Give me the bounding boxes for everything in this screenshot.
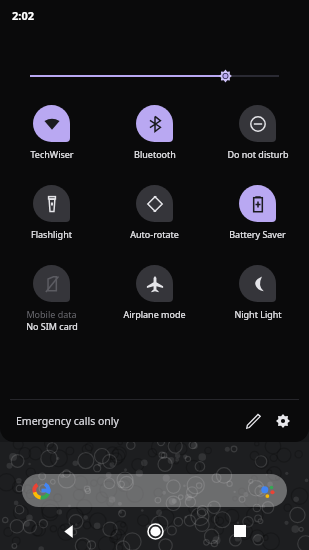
staticText: Bluetooth [134, 148, 176, 160]
button[interactable]: Brightness [0, 68, 309, 84]
staticText: Do not disturb [227, 148, 289, 160]
button[interactable]: Mobile data [0, 265, 103, 332]
button[interactable]: Night Light [206, 265, 309, 320]
staticText: 2:02 [12, 8, 34, 23]
staticText: TechWiser [30, 148, 74, 160]
button[interactable]: Edit [239, 407, 267, 435]
button[interactable]: Auto-rotate [103, 185, 206, 240]
staticText: Flashlight [31, 228, 72, 240]
button[interactable]: Back [56, 518, 82, 544]
button[interactable]: Search [22, 474, 287, 507]
button[interactable]: TechWiser [0, 105, 103, 160]
button[interactable]: Airplane mode [103, 265, 206, 320]
button[interactable]: Bluetooth [103, 105, 206, 160]
staticText: Emergency calls only [16, 414, 119, 428]
button[interactable]: Battery Saver [206, 185, 309, 240]
staticText: Airplane mode [123, 308, 186, 320]
button[interactable]: Do not disturb [206, 105, 309, 160]
button[interactable]: Recents [227, 518, 253, 544]
staticText: Night Light [234, 308, 282, 320]
staticText: No SIM card [26, 320, 78, 332]
button[interactable]: Flashlight [0, 185, 103, 240]
button[interactable]: Home [142, 518, 168, 544]
staticText: Auto-rotate [130, 228, 179, 240]
staticText: Mobile data [26, 308, 77, 320]
button[interactable]: Settings [269, 407, 297, 435]
staticText: Battery Saver [229, 228, 286, 240]
